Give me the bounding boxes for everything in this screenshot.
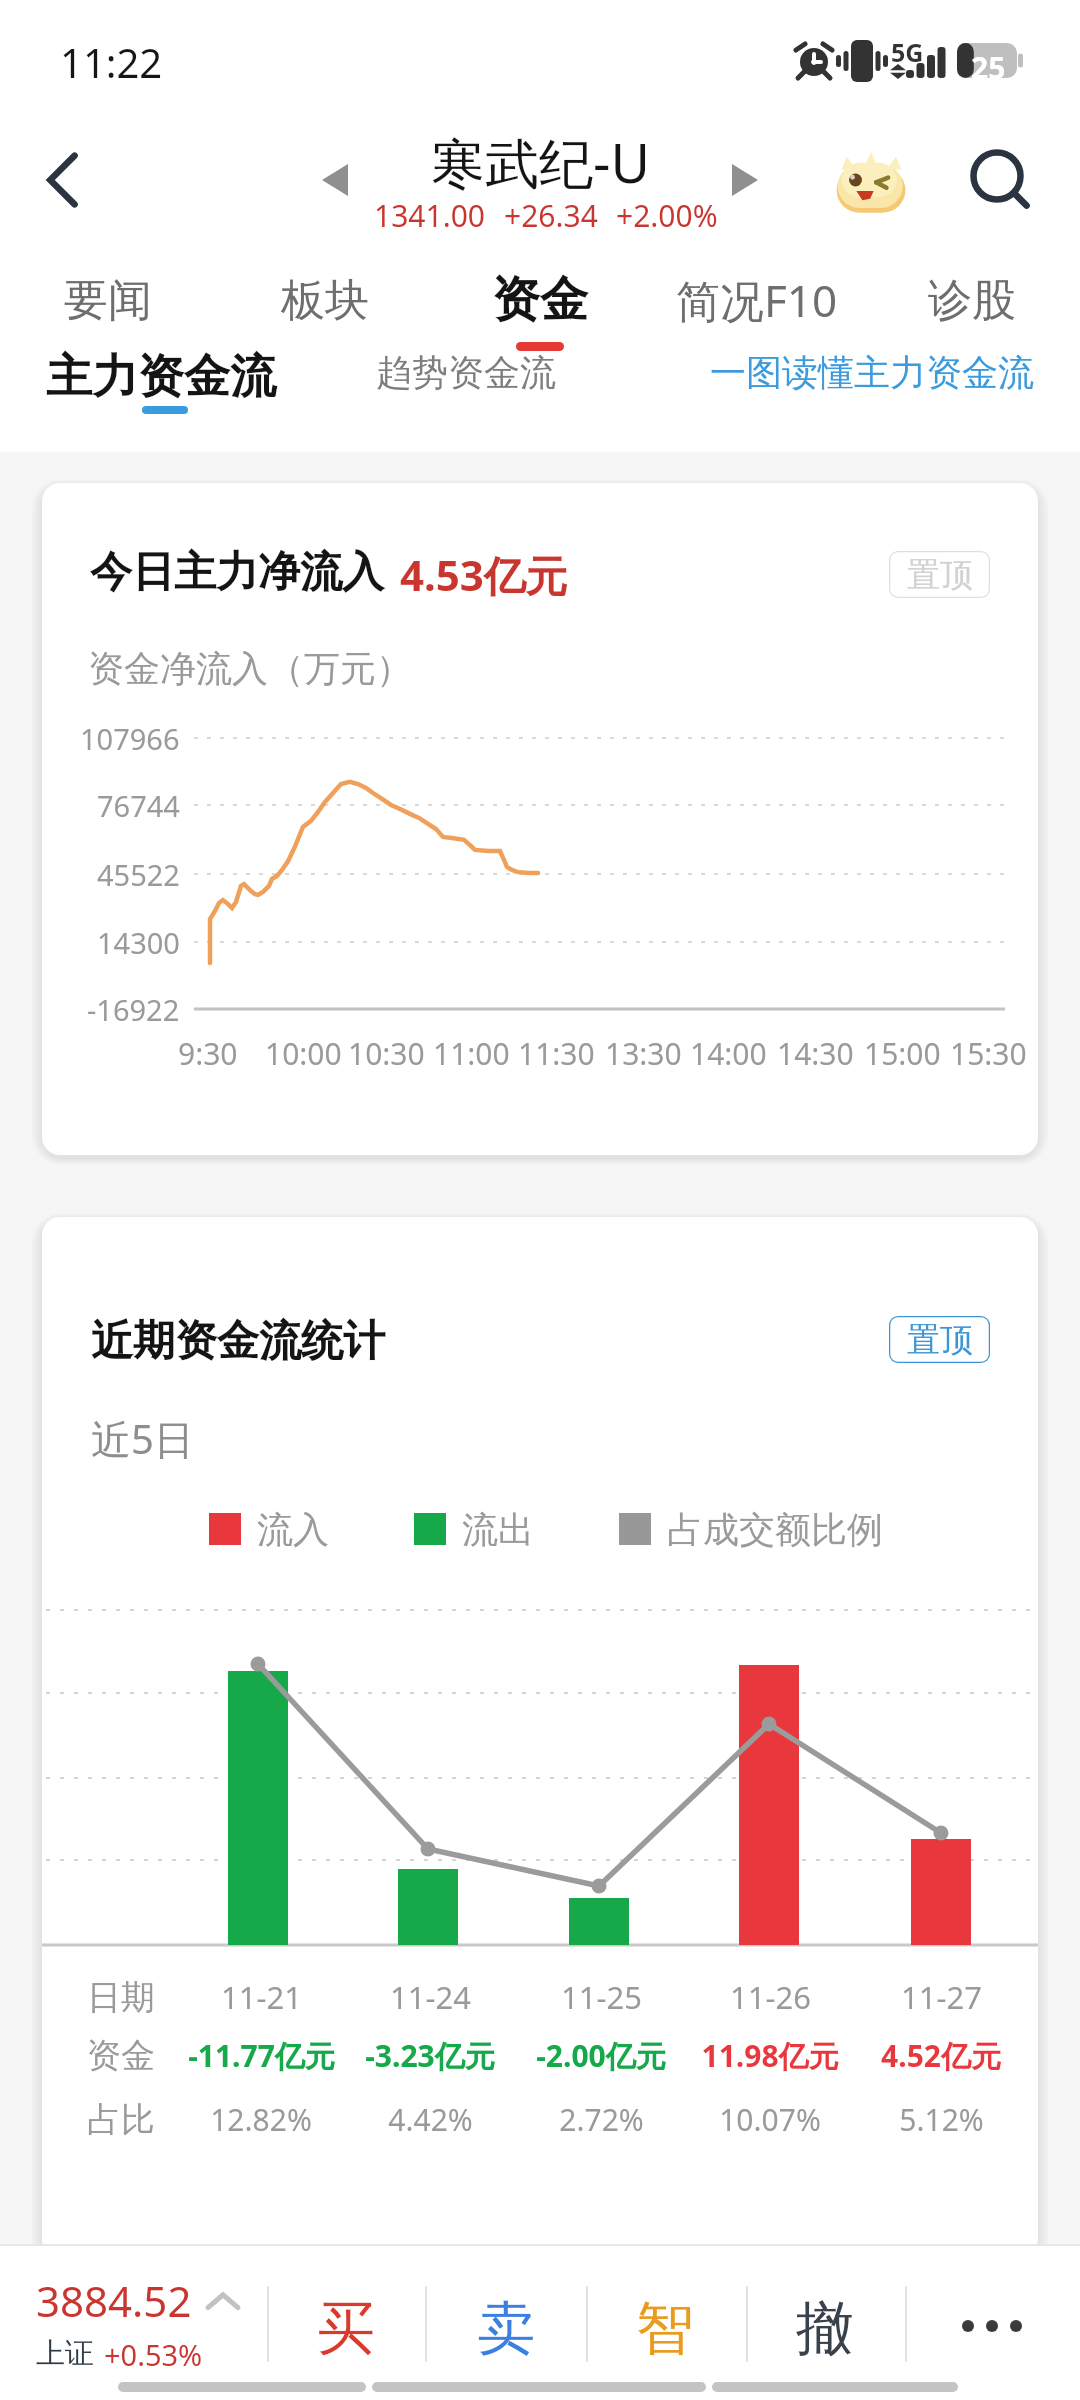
staticText: 日期 xyxy=(87,1976,155,2019)
staticText: 趋势资金流 xyxy=(376,350,556,395)
staticText: 10:00 xyxy=(265,1033,342,1074)
staticText: 11:30 xyxy=(518,1033,595,1074)
staticText: 今日主力净流入 xyxy=(90,546,384,599)
staticText: 占比 xyxy=(87,2098,155,2141)
staticText: 11:22 xyxy=(60,35,163,89)
staticText: 近期资金流统计 xyxy=(91,1315,385,1368)
staticText: -3.23亿元 xyxy=(365,2035,495,2076)
staticText: 11:00 xyxy=(433,1033,510,1074)
staticText: 11.98亿元 xyxy=(701,2035,839,2076)
staticText: 1341.00 xyxy=(374,195,485,236)
button[interactable]: 资金 xyxy=(440,248,640,352)
staticText: -11.77亿元 xyxy=(188,2035,335,2076)
button[interactable]: 撤 xyxy=(746,2266,904,2390)
staticText: 11-21 xyxy=(221,1976,302,2018)
button[interactable]: 板块 xyxy=(225,248,425,352)
staticText: 流出 xyxy=(462,1507,534,1552)
staticText: 5G xyxy=(891,35,924,69)
button[interactable]: 3884.52 xyxy=(36,2272,246,2372)
staticText: 流入 xyxy=(257,1507,329,1552)
button[interactable]: 一图读懂主力资金流 xyxy=(690,340,1058,440)
staticText: 15:00 xyxy=(864,1033,941,1074)
button[interactable]: 诊股 xyxy=(872,248,1072,352)
staticText: 4.42% xyxy=(388,2099,473,2140)
button[interactable]: 置顶 xyxy=(889,1316,990,1363)
staticText: 置顶 xyxy=(907,1319,973,1361)
staticText: 上证 xyxy=(36,2335,94,2372)
staticText: 要闻 xyxy=(64,273,152,328)
staticText: 76744 xyxy=(97,786,180,825)
staticText: 5.12% xyxy=(899,2099,984,2140)
staticText: 11-25 xyxy=(561,1976,642,2018)
button[interactable]: Search xyxy=(954,135,1064,245)
staticText: 11-27 xyxy=(901,1976,982,2018)
staticText: 14300 xyxy=(97,923,180,962)
staticText: 107966 xyxy=(80,719,180,758)
button[interactable]: More xyxy=(930,2264,1053,2388)
staticText: 主力资金流 xyxy=(46,348,276,406)
button[interactable]: 买 xyxy=(267,2266,425,2390)
staticText: +2.00% xyxy=(616,195,718,236)
staticText: 13:30 xyxy=(605,1033,682,1074)
staticText: 板块 xyxy=(281,273,369,328)
staticText: 占成交额比例 xyxy=(667,1507,883,1552)
button[interactable]: 智 xyxy=(586,2266,744,2390)
staticText: 14:30 xyxy=(777,1033,854,1074)
staticText: 3884.52 xyxy=(36,2272,192,2329)
staticText: 9:30 xyxy=(178,1033,238,1074)
staticText: 11-24 xyxy=(390,1976,471,2018)
staticText: 诊股 xyxy=(928,273,1016,328)
staticText: 置顶 xyxy=(907,554,973,596)
staticText: 10.07% xyxy=(719,2099,821,2140)
staticText: 12.82% xyxy=(210,2099,312,2140)
staticText: 买 xyxy=(317,2292,375,2365)
staticText: 25 xyxy=(971,47,1006,88)
staticText: +26.34 xyxy=(504,195,598,236)
button[interactable]: 卖 xyxy=(427,2266,585,2390)
staticText: 近5日 xyxy=(91,1411,194,1466)
button[interactable]: 简况F10 xyxy=(657,248,857,352)
staticText: 资金 xyxy=(492,270,588,330)
staticText: -16922 xyxy=(87,990,180,1029)
button[interactable]: Next stock xyxy=(702,137,788,223)
staticText: +0.53% xyxy=(104,2335,203,2372)
staticText: 卖 xyxy=(477,2292,535,2365)
staticText: 资金净流入（万元） xyxy=(88,646,412,691)
staticText: 2.72% xyxy=(559,2099,644,2140)
button[interactable]: 主力资金流 xyxy=(30,340,300,440)
button[interactable]: Back xyxy=(0,117,126,243)
staticText: 寒武纪-U xyxy=(431,125,650,199)
staticText: 11-26 xyxy=(730,1976,811,2018)
staticText: 简况F10 xyxy=(676,270,838,330)
staticText: 15:30 xyxy=(950,1033,1027,1074)
staticText: 14:00 xyxy=(690,1033,767,1074)
button[interactable]: Profile xyxy=(816,125,926,235)
staticText: 智 xyxy=(636,2292,694,2365)
button[interactable]: 趋势资金流 xyxy=(356,340,574,440)
staticText: 4.52亿元 xyxy=(881,2035,1001,2076)
button[interactable]: Previous stock xyxy=(292,137,378,223)
staticText: -2.00亿元 xyxy=(536,2035,666,2076)
staticText: 资金 xyxy=(87,2034,155,2077)
button[interactable]: 要闻 xyxy=(8,248,208,352)
staticText: 4.53亿元 xyxy=(400,546,568,603)
button[interactable]: 置顶 xyxy=(889,551,990,598)
staticText: 10:30 xyxy=(348,1033,425,1074)
staticText: 一图读懂主力资金流 xyxy=(710,350,1034,395)
staticText: 撤 xyxy=(796,2292,854,2365)
staticText: 45522 xyxy=(97,855,180,894)
